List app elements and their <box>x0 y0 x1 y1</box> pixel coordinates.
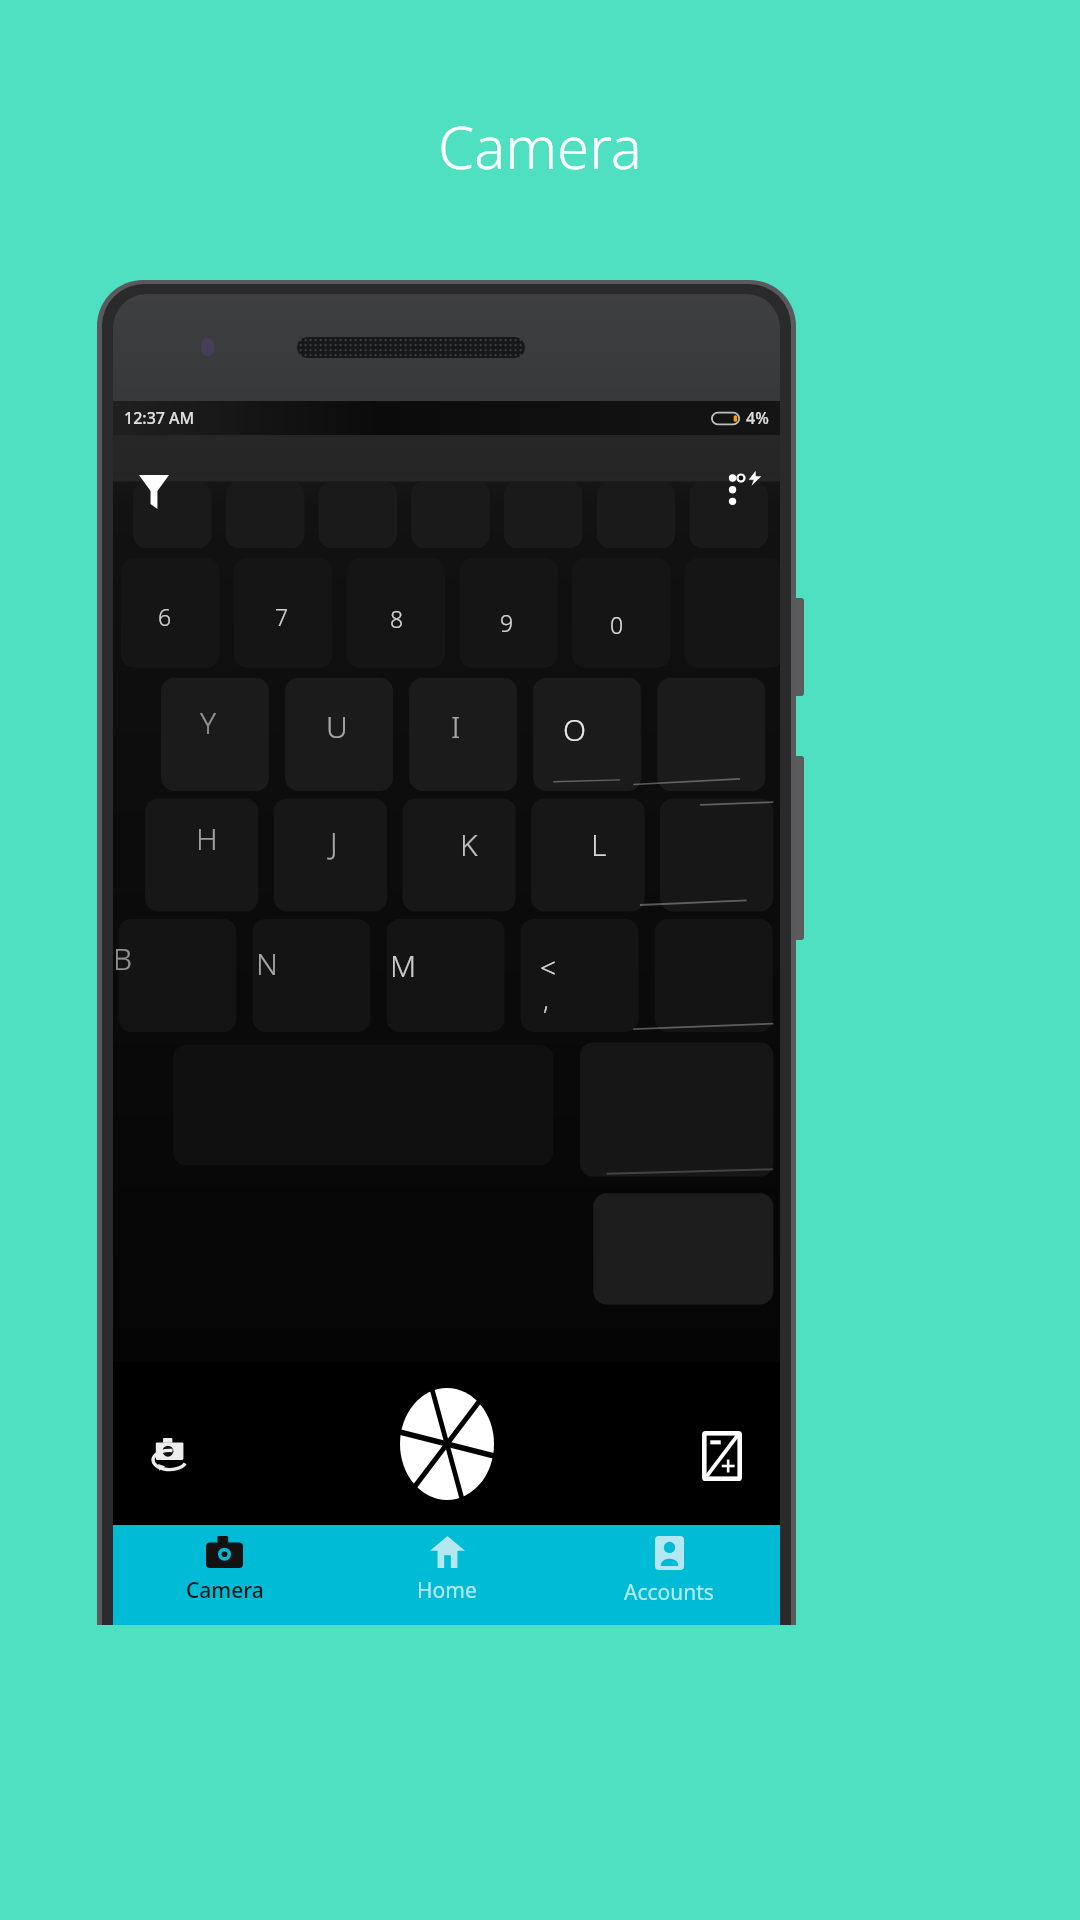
staticText: M <box>390 945 417 986</box>
staticText: 12:37 AM <box>124 407 195 429</box>
button[interactable]: Accounts <box>558 1525 780 1625</box>
staticText: L <box>591 824 607 865</box>
staticText: Camera <box>438 107 642 186</box>
staticText: K <box>460 824 478 865</box>
staticText: < <box>540 948 556 986</box>
staticText: O <box>563 709 587 750</box>
button[interactable]: Filters <box>125 463 183 521</box>
button[interactable]: Home <box>336 1525 558 1625</box>
staticText: Y <box>200 702 217 743</box>
staticText: J <box>330 822 338 863</box>
staticText: B <box>113 938 132 979</box>
staticText: Accounts <box>624 1578 714 1607</box>
button[interactable]: Switch camera <box>133 1418 209 1494</box>
staticText: Camera <box>186 1576 264 1605</box>
staticText: , <box>543 982 549 1017</box>
staticText: 0 <box>610 609 624 640</box>
button[interactable]: Camera <box>113 1525 336 1625</box>
staticText: Home <box>417 1576 477 1605</box>
staticText: U <box>326 706 348 747</box>
staticText: 7 <box>275 601 289 632</box>
staticText: H <box>196 818 218 859</box>
button[interactable]: Exposure compensation <box>686 1420 758 1492</box>
staticText: 4% <box>746 407 769 429</box>
button[interactable]: Take photo <box>391 1388 503 1500</box>
staticText: I <box>451 706 461 747</box>
staticText: 8 <box>390 603 404 634</box>
button[interactable]: More options and flash <box>710 459 774 523</box>
staticText: N <box>256 943 278 984</box>
staticText: 6 <box>158 601 172 632</box>
staticText: 9 <box>500 607 514 638</box>
